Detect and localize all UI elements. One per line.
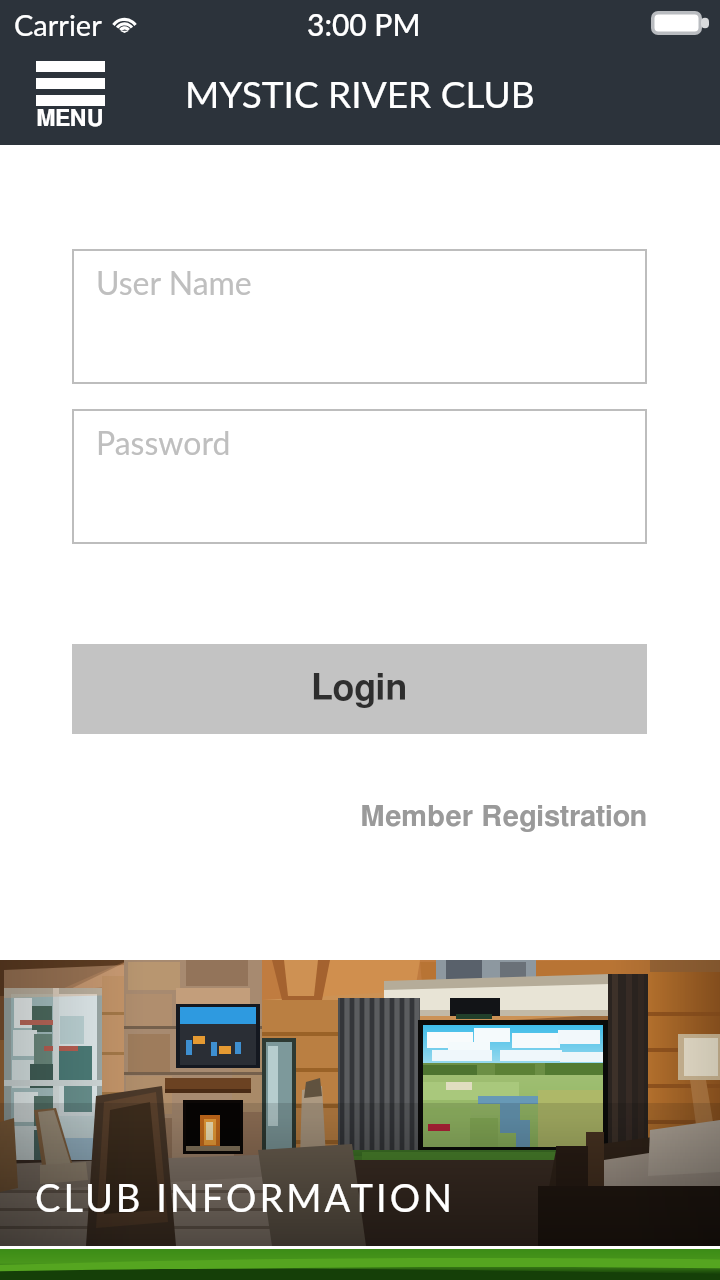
staticText: Carrier <box>14 7 102 42</box>
button[interactable] <box>0 1249 720 1280</box>
staticText: Password <box>96 423 231 461</box>
button[interactable]: Password <box>72 409 647 544</box>
button[interactable]: User Name <box>72 249 647 384</box>
button[interactable]: Menu <box>36 61 105 129</box>
staticText: Login <box>311 671 408 707</box>
staticText: Member Registration <box>360 803 648 832</box>
button[interactable]: Login <box>72 644 647 734</box>
staticText: MENU <box>36 108 104 131</box>
button[interactable]: Member Registration <box>360 803 648 832</box>
staticText: CLUB INFORMATION <box>35 1174 456 1220</box>
staticText: MYSTIC RIVER CLUB <box>185 71 535 115</box>
staticText: 3:00 PM <box>307 6 421 42</box>
staticText: User Name <box>96 263 252 301</box>
